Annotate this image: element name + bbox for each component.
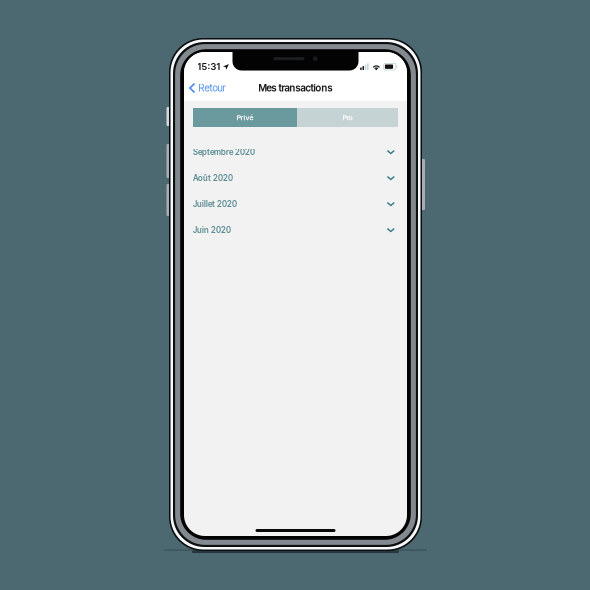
staticText: Août 2020 xyxy=(193,173,233,183)
button[interactable]: Août 2020 xyxy=(184,165,407,191)
staticText: 15:31 xyxy=(197,61,220,72)
button[interactable]: Pro xyxy=(297,108,398,127)
staticText: Juillet 2020 xyxy=(193,199,237,209)
staticText: Mes transactions xyxy=(258,82,332,94)
staticText: Retour xyxy=(199,82,226,94)
button[interactable]: Septembre 2020 xyxy=(184,139,407,165)
staticText: Privé xyxy=(236,113,253,122)
button[interactable]: Privé xyxy=(193,108,297,127)
button[interactable]: Juillet 2020 xyxy=(184,191,407,217)
staticText: Septembre 2020 xyxy=(193,147,255,157)
button[interactable]: Retour xyxy=(184,76,226,100)
staticText: Juin 2020 xyxy=(193,225,231,235)
staticText: Pro xyxy=(342,113,352,122)
button[interactable]: Juin 2020 xyxy=(184,217,407,243)
